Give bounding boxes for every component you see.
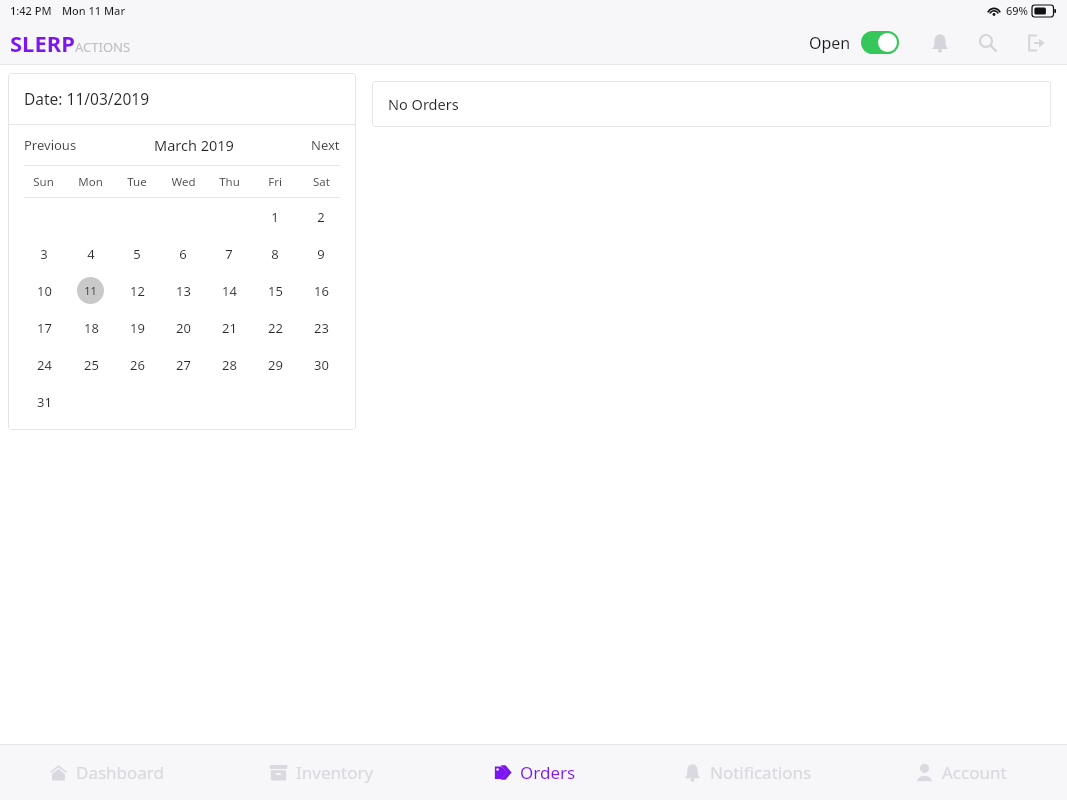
button[interactable]: 21 [214,313,244,343]
staticText: 6 [179,245,187,263]
button[interactable]: Account [854,744,1067,800]
staticText: Dashboard [76,761,165,784]
button[interactable]: 5 [122,239,152,269]
button[interactable]: 16 [306,276,336,306]
staticText: 31 [37,393,52,411]
button[interactable]: Next [311,136,340,154]
staticText: 14 [222,282,237,300]
staticText: 18 [84,319,99,337]
staticText: 13 [176,282,191,300]
staticText: ACTIONS [75,38,131,56]
staticText: Tue [127,174,147,190]
button[interactable]: 31 [29,387,59,417]
staticText: 3 [40,245,48,263]
button[interactable]: 29 [260,350,290,380]
staticText: 21 [222,319,237,337]
staticText: Wed [171,174,196,190]
button[interactable]: Notifications [923,26,957,60]
staticText: 4 [87,245,95,263]
button[interactable]: 20 [168,313,198,343]
staticText: 11 [84,283,97,298]
staticText: 9 [317,245,325,263]
staticText: Fri [268,174,282,190]
staticText: Sat [313,174,330,190]
button[interactable]: 2 [306,202,336,232]
staticText: 28 [222,356,237,374]
staticText: Next [311,136,340,154]
staticText: 5 [133,245,141,263]
button[interactable]: 22 [260,313,290,343]
button[interactable]: 11 [77,277,104,304]
button[interactable]: 28 [214,350,244,380]
button[interactable]: 10 [29,276,59,306]
staticText: 26 [130,356,145,374]
staticText: 1:42 PM [10,3,52,18]
staticText: Mon [78,174,103,190]
staticText: 8 [271,245,279,263]
button[interactable]: 13 [168,276,198,306]
button[interactable]: 24 [29,350,59,380]
button[interactable]: Previous [24,136,77,154]
staticText: Mon 11 Mar [62,3,126,18]
button[interactable]: Open [809,31,899,54]
staticText: 19 [130,319,145,337]
button[interactable]: 27 [168,350,198,380]
staticText: 17 [37,319,52,337]
button[interactable]: Inventory [214,744,428,800]
staticText: Previous [24,136,77,154]
button[interactable]: 3 [29,239,59,269]
button[interactable]: 7 [214,239,244,269]
staticText: 20 [176,319,191,337]
staticText: Date: 11/03/2019 [24,88,149,109]
button[interactable]: 1 [260,202,290,232]
button[interactable]: 26 [122,350,152,380]
button[interactable]: Search [971,26,1005,60]
staticText: 24 [37,356,52,374]
staticText: Thu [219,174,240,190]
staticText: 23 [314,319,329,337]
staticText: Sun [33,174,54,190]
staticText: 7 [225,245,233,263]
staticText: No Orders [388,94,459,114]
staticText: 12 [130,282,145,300]
staticText: 16 [314,282,329,300]
staticText: 69% [1006,3,1028,18]
staticText: 29 [268,356,283,374]
button[interactable]: 4 [76,239,106,269]
button[interactable]: 17 [29,313,59,343]
button[interactable]: 12 [122,276,152,306]
button[interactable]: 23 [306,313,336,343]
staticText: Inventory [296,761,374,784]
staticText: 30 [314,356,329,374]
staticText: 27 [176,356,191,374]
staticText: 25 [84,356,99,374]
button[interactable]: 30 [306,350,336,380]
staticText: 2 [317,208,325,226]
button[interactable]: Notifications [641,744,854,800]
staticText: Open [809,32,851,54]
button[interactable]: 9 [306,239,336,269]
staticText: 1 [271,208,279,226]
staticText: 10 [37,282,52,300]
button[interactable]: 25 [76,350,106,380]
button[interactable]: 15 [260,276,290,306]
staticText: March 2019 [154,135,234,155]
staticText: 15 [268,282,283,300]
staticText: 22 [268,319,283,337]
staticText: Notifications [710,761,812,784]
staticText: Account [942,761,1007,784]
button[interactable]: Dashboard [0,744,214,800]
button[interactable]: 14 [214,276,244,306]
button[interactable]: 6 [168,239,198,269]
button[interactable]: Log out [1019,26,1053,60]
button[interactable]: 18 [76,313,106,343]
button[interactable]: Orders [428,744,641,800]
staticText: Orders [520,761,576,784]
button[interactable]: 8 [260,239,290,269]
staticText: SLERP [10,28,75,58]
button[interactable]: 19 [122,313,152,343]
